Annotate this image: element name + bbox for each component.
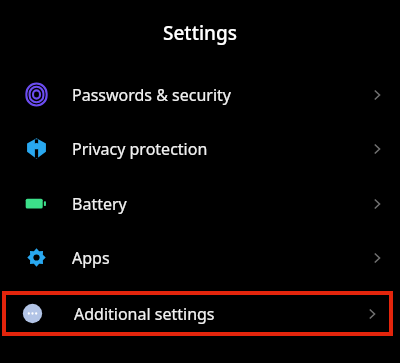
button[interactable]: Apps (0, 231, 400, 284)
staticText: Settings (163, 20, 237, 46)
staticText: Additional settings (74, 303, 215, 325)
button[interactable]: Passwords & security (0, 68, 400, 121)
staticText: Apps (72, 247, 110, 269)
staticText: Privacy protection (72, 138, 208, 160)
staticText: Passwords & security (72, 84, 231, 106)
staticText: Battery (72, 193, 127, 215)
button[interactable]: Privacy protection (0, 122, 400, 175)
button[interactable]: Battery (0, 177, 400, 230)
button[interactable]: Additional settings (2, 291, 393, 336)
